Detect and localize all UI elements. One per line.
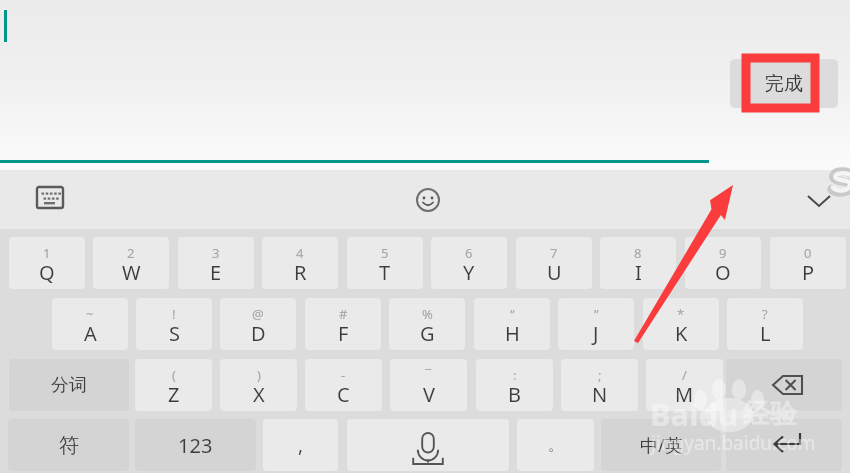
staticText: 2	[127, 244, 135, 262]
staticText: 6	[465, 244, 473, 262]
button[interactable]: 完成	[730, 59, 838, 108]
staticText: *	[677, 305, 685, 323]
staticText: J	[593, 320, 599, 347]
staticText: W	[122, 259, 141, 286]
staticText: X	[253, 381, 265, 408]
button[interactable]: 0	[770, 237, 846, 289]
button[interactable]: ¯	[390, 359, 467, 411]
staticText: !	[172, 305, 176, 323]
staticText: F	[338, 320, 349, 347]
button[interactable]: ~	[52, 298, 128, 350]
staticText: 1	[43, 244, 51, 262]
staticText: U	[547, 259, 562, 286]
button[interactable]: Space / voice input	[347, 419, 509, 471]
staticText: T	[379, 259, 391, 286]
button[interactable]: 9	[685, 237, 761, 289]
staticText: :	[513, 366, 517, 384]
button[interactable]: /	[646, 359, 723, 411]
staticText: ¯	[425, 366, 432, 384]
button[interactable]: 8	[600, 237, 676, 289]
staticText: R	[294, 259, 307, 286]
button[interactable]: Enter	[726, 419, 842, 471]
staticText: ~	[86, 305, 94, 323]
button[interactable]: “	[474, 298, 550, 350]
button[interactable]: 。	[517, 419, 594, 471]
staticText: V	[423, 381, 435, 408]
staticText: -	[341, 366, 346, 384]
staticText: %	[422, 305, 433, 323]
staticText: L	[760, 320, 771, 347]
button[interactable]: !	[136, 298, 212, 350]
button[interactable]: 3	[178, 237, 254, 289]
staticText: 。	[548, 436, 563, 455]
staticText: ?	[762, 305, 768, 323]
staticText: K	[675, 320, 688, 347]
button[interactable]: *	[643, 298, 719, 350]
button[interactable]: 4	[262, 237, 338, 289]
staticText: Baidu	[650, 393, 739, 435]
button[interactable]: ?	[727, 298, 803, 350]
button[interactable]: ”	[558, 298, 634, 350]
staticText: H	[505, 320, 520, 347]
button[interactable]: 123	[135, 419, 256, 471]
button[interactable]: 6	[431, 237, 507, 289]
staticText: Z	[168, 381, 180, 408]
staticText: #	[339, 305, 348, 323]
staticText: ,	[298, 432, 304, 458]
button[interactable]: (	[135, 359, 212, 411]
button[interactable]: Emoji	[408, 180, 448, 220]
button[interactable]: 5	[347, 237, 423, 289]
staticText: Q	[39, 259, 55, 286]
button[interactable]: Backspace	[726, 359, 842, 411]
staticText: C	[337, 381, 350, 408]
staticText: O	[715, 259, 731, 286]
staticText: 经验	[743, 397, 797, 431]
staticText: )	[257, 366, 261, 384]
staticText: M	[675, 381, 694, 408]
button[interactable]: ;	[561, 359, 638, 411]
staticText: P	[802, 259, 815, 286]
button[interactable]: #	[305, 298, 381, 350]
staticText: 5	[381, 244, 389, 262]
button[interactable]: 1	[9, 237, 85, 289]
staticText: 123	[178, 432, 213, 459]
staticText: 符	[59, 433, 79, 458]
staticText: A	[84, 320, 97, 347]
staticText: D	[251, 320, 266, 347]
button[interactable]: 中/英	[601, 419, 721, 471]
button[interactable]: :	[476, 359, 553, 411]
staticText: I	[635, 259, 642, 286]
button[interactable]: 分词	[9, 359, 129, 411]
button[interactable]: Keyboard settings	[30, 181, 70, 213]
button[interactable]: 7	[516, 237, 592, 289]
staticText: 3	[212, 244, 220, 262]
staticText: E	[210, 259, 222, 286]
staticText: 分词	[51, 374, 87, 397]
staticText: G	[420, 320, 435, 347]
button[interactable]: 2	[93, 237, 169, 289]
button[interactable]: ,	[263, 419, 338, 471]
staticText: @	[252, 305, 264, 323]
button[interactable]: -	[305, 359, 382, 411]
staticText: 完成	[765, 72, 803, 96]
staticText: ;	[598, 366, 602, 384]
staticText: 9	[719, 244, 727, 262]
staticText: (	[172, 366, 176, 384]
staticText: /	[682, 366, 687, 384]
staticText: 8	[634, 244, 642, 262]
button[interactable]: @	[220, 298, 296, 350]
staticText: Y	[463, 259, 475, 286]
staticText: jingyan.baidu.com	[651, 430, 816, 456]
button[interactable]: Hide keyboard	[798, 180, 840, 222]
staticText: 4	[296, 244, 304, 262]
staticText: “	[510, 305, 515, 323]
staticText: ”	[594, 305, 599, 323]
button[interactable]: 符	[8, 419, 129, 471]
staticText: N	[592, 381, 608, 408]
button[interactable]: )	[220, 359, 297, 411]
staticText: 中/英	[640, 433, 683, 458]
staticText: S	[169, 320, 180, 347]
staticText: 7	[550, 244, 558, 262]
staticText: B	[508, 381, 521, 408]
button[interactable]: %	[389, 298, 465, 350]
